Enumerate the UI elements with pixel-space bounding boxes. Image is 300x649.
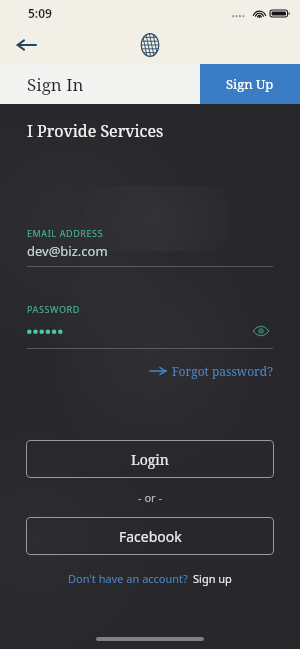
staticText: Facebook	[119, 527, 182, 546]
staticText: dev@biz.com	[27, 242, 108, 260]
staticText: Sign In	[27, 73, 84, 96]
staticText: Forgot password?	[172, 363, 273, 379]
button[interactable]: Forgot password?	[150, 359, 273, 383]
button[interactable]: Facebook	[26, 517, 274, 555]
staticText: EMAIL ADDRESS	[27, 227, 104, 239]
button[interactable]: dev@biz.com	[27, 242, 273, 260]
button[interactable]: Login	[26, 440, 274, 478]
staticText: Don't have an account?	[68, 571, 188, 586]
staticText: PASSWORD	[27, 303, 80, 315]
staticText: 5:09	[28, 5, 52, 21]
button[interactable]: Don't have an account?	[0, 571, 300, 586]
button[interactable]: Sign In	[0, 64, 200, 104]
staticText: Sign Up	[226, 75, 274, 93]
button[interactable]: Back	[6, 26, 46, 64]
button[interactable]	[27, 324, 249, 338]
staticText: - or -	[0, 490, 300, 505]
staticText: Login	[131, 450, 169, 469]
staticText: Sign up	[193, 571, 232, 586]
button[interactable]: Show password	[249, 319, 273, 343]
button[interactable]: Sign Up	[200, 64, 300, 104]
staticText: I Provide Services	[27, 120, 164, 142]
